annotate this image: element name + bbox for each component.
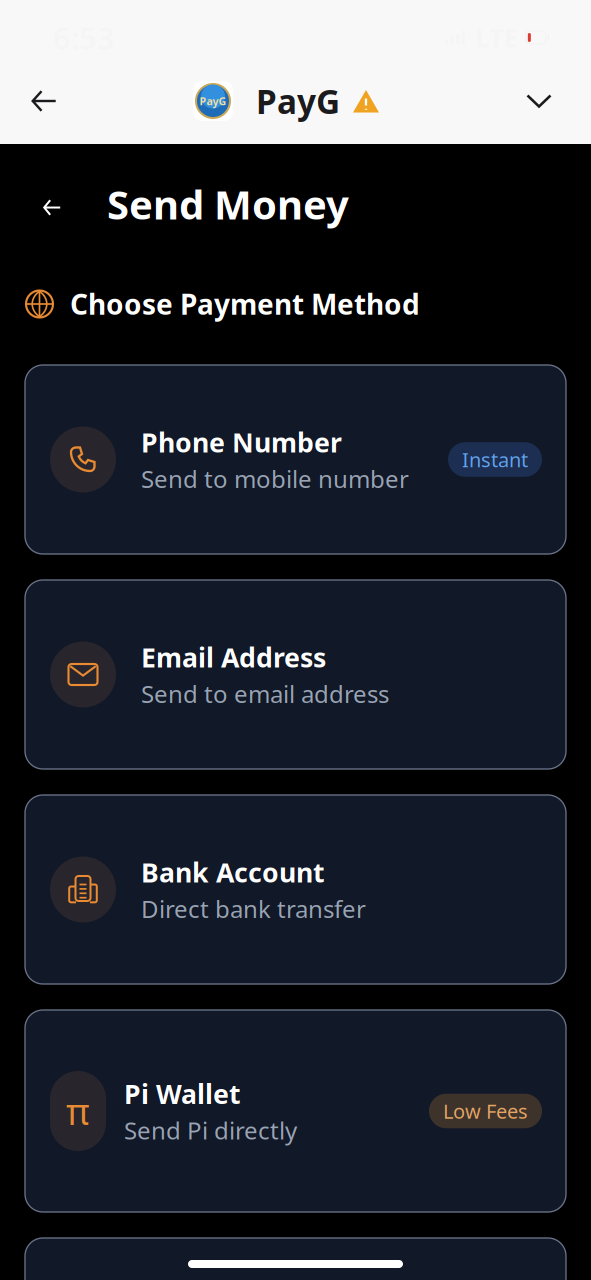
staticText: Email Address [141,639,326,675]
button[interactable]: Bank Account [25,795,566,984]
staticText: Send to email address [141,678,389,710]
button[interactable]: Back [43,183,61,225]
staticText: Choose Payment Method [70,285,420,323]
staticText: Low Fees [443,1098,528,1124]
button[interactable]: Hide toolbar [514,81,564,121]
staticText: Direct bank transfer [141,893,366,925]
button[interactable]: π [25,1010,566,1212]
staticText: Send to mobile number [141,463,409,495]
staticText: π [66,1087,90,1135]
staticText: Send Money [107,177,349,230]
button[interactable]: Back [19,81,69,121]
button[interactable]: Phone Number [25,365,566,554]
button[interactable]: Email Address [25,580,566,769]
staticText: Send Pi directly [124,1114,297,1146]
button[interactable] [25,1238,566,1280]
staticText: Phone Number [141,424,342,460]
staticText: PayG [256,79,340,123]
staticText: Pi Wallet [124,1076,241,1111]
staticText: Bank Account [141,854,325,890]
staticText: PayG [199,94,226,108]
staticText: Instant [462,446,528,473]
